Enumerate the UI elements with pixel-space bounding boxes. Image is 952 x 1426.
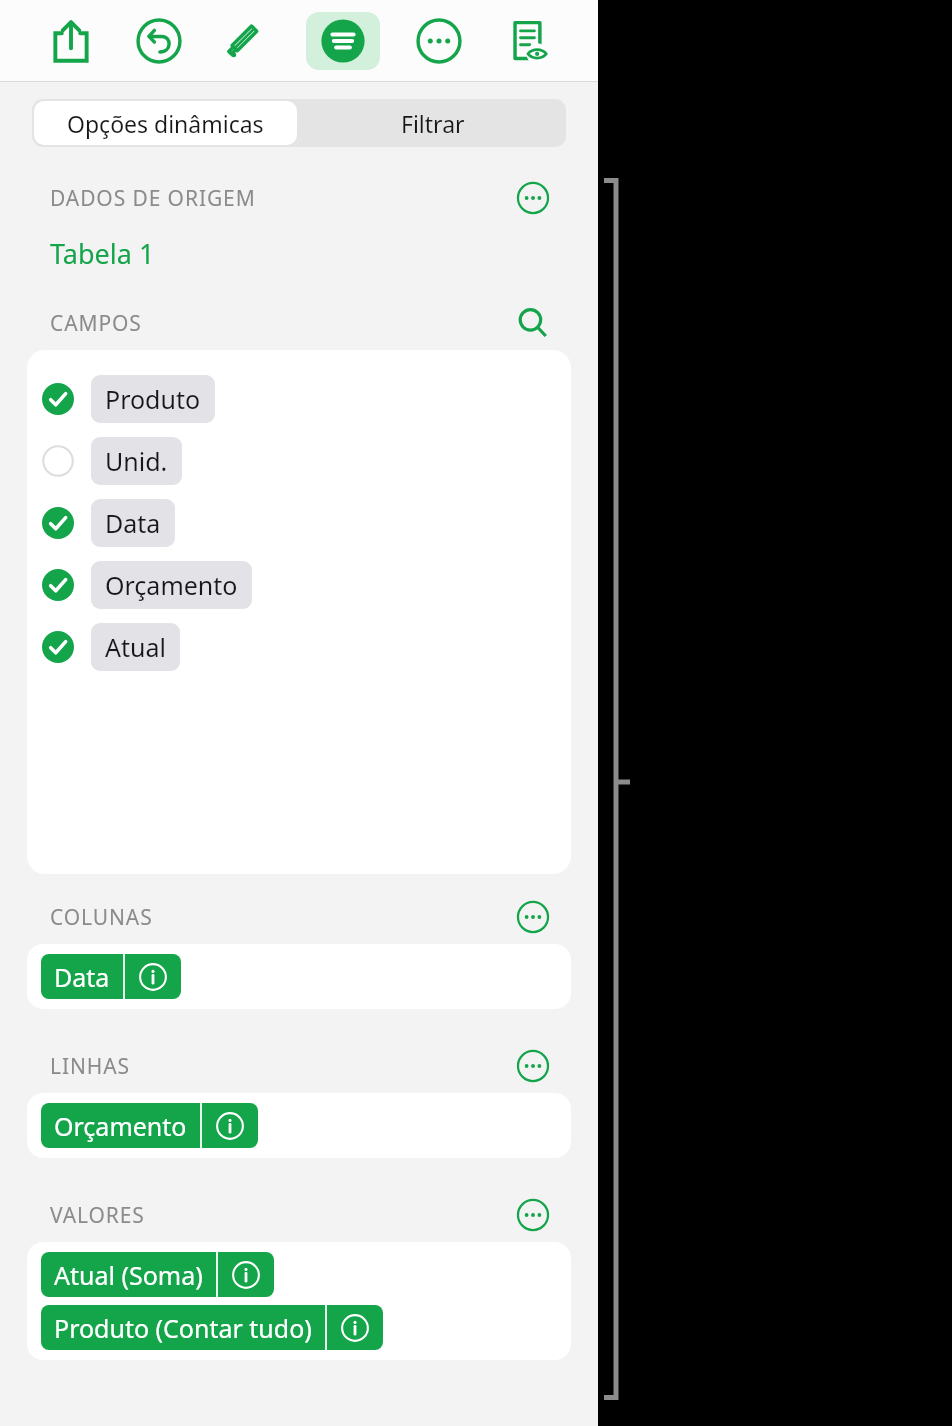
staticText: Filtrar <box>401 108 465 139</box>
staticText: Data <box>54 960 110 994</box>
staticText: Produto (Contar tudo) <box>54 1311 312 1345</box>
staticText: Atual <box>105 630 166 664</box>
button[interactable]: Info for Data <box>125 954 181 999</box>
button[interactable]: Atual <box>27 616 571 678</box>
button[interactable]: Orçamento <box>41 1103 258 1148</box>
button[interactable]: Data <box>41 954 181 999</box>
button[interactable]: Data <box>27 492 571 554</box>
staticText: VALORES <box>50 1201 145 1230</box>
button[interactable]: More <box>410 12 468 70</box>
button[interactable]: LINHAS options <box>514 1049 552 1083</box>
staticText: Tabela 1 <box>50 235 155 272</box>
staticText: COLUNAS <box>50 903 153 932</box>
staticText: Data <box>105 506 161 540</box>
button[interactable]: Filtrar <box>299 99 566 147</box>
button[interactable]: Preview <box>498 12 556 70</box>
button[interactable]: Produto (Contar tudo) <box>41 1305 383 1350</box>
button[interactable]: Unid. <box>27 430 571 492</box>
button[interactable]: DADOS DE ORIGEM options <box>514 181 552 215</box>
staticText: LINHAS <box>50 1052 130 1081</box>
staticText: Produto <box>105 382 201 416</box>
button[interactable]: Share <box>42 12 100 70</box>
staticText: Atual (Soma) <box>54 1258 203 1292</box>
button[interactable]: COLUNAS options <box>514 900 552 934</box>
staticText: Unid. <box>105 444 168 478</box>
staticText: CAMPOS <box>50 309 142 338</box>
staticText: Opções dinâmicas <box>67 108 264 139</box>
button[interactable]: Search <box>514 306 552 340</box>
button[interactable]: Organize <box>306 12 380 70</box>
button[interactable]: Info for Orçamento <box>202 1103 258 1148</box>
button[interactable]: Info for Produto (Contar tudo) <box>327 1305 383 1350</box>
button[interactable]: Info for Atual (Soma) <box>218 1252 274 1297</box>
staticText: DADOS DE ORIGEM <box>50 184 256 213</box>
button[interactable]: Orçamento <box>27 554 571 616</box>
staticText: Orçamento <box>105 568 238 602</box>
button[interactable]: Produto <box>27 368 571 430</box>
button[interactable]: Opções dinâmicas <box>34 101 297 145</box>
button[interactable]: Atual (Soma) <box>41 1252 274 1297</box>
staticText: Orçamento <box>54 1109 187 1143</box>
button[interactable]: Tabela 1 <box>36 231 169 276</box>
button[interactable]: Format <box>218 12 276 70</box>
button[interactable]: VALORES options <box>514 1198 552 1232</box>
button[interactable]: Undo <box>130 12 188 70</box>
